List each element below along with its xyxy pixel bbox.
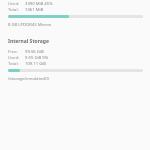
staticText: 109.11 GiB: [25, 61, 47, 67]
staticText: Total:: [8, 61, 19, 67]
staticText: Used:: [8, 1, 20, 7]
staticText: 3390 MiB 45%: [25, 1, 53, 7]
button[interactable]: Internal Storage: [8, 38, 143, 82]
staticText: 99.56 GiB: [25, 49, 44, 55]
staticText: 8 GB LPDDR4X Micron: [8, 22, 52, 28]
staticText: Free:: [8, 49, 18, 55]
staticText: Used:: [8, 55, 20, 61]
staticText: Total:: [8, 7, 19, 13]
staticText: 7461 MiB: [25, 7, 44, 13]
staticText: Internal Storage: [8, 38, 49, 45]
staticText: /storage/emulated/0: [8, 76, 49, 82]
staticText: 9.55 GiB 9%: [25, 55, 49, 61]
button[interactable]: Used:: [8, 1, 143, 28]
